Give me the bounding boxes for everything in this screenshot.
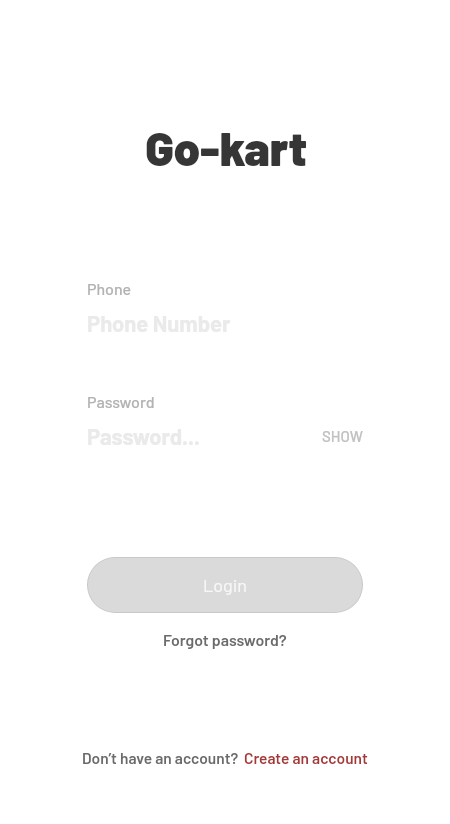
button[interactable]: Forgot password? bbox=[157, 626, 293, 653]
staticText: Phone bbox=[87, 279, 132, 298]
button[interactable]: Password bbox=[87, 392, 309, 449]
button[interactable]: SHOW bbox=[316, 421, 369, 451]
staticText: Don’t have an account? bbox=[82, 748, 239, 767]
staticText: SHOW bbox=[322, 427, 363, 445]
button[interactable]: Login bbox=[87, 557, 363, 613]
button[interactable]: Create an account bbox=[244, 748, 368, 767]
staticText: Go-kart bbox=[1, 119, 450, 175]
staticText: Password bbox=[87, 392, 155, 411]
button[interactable]: Phone bbox=[87, 279, 363, 336]
staticText: Forgot password? bbox=[163, 630, 287, 649]
staticText: Phone Number bbox=[87, 310, 231, 336]
staticText: Login bbox=[203, 574, 247, 596]
staticText: Password... bbox=[87, 423, 200, 449]
staticText: Create an account bbox=[244, 748, 368, 767]
